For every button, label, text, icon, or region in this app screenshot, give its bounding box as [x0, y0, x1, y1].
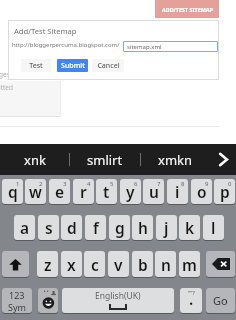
staticText: http://bloggerpercuma.blogspot.com/ — [12, 41, 120, 49]
staticText: 4 — [87, 180, 91, 188]
staticText: e — [55, 181, 65, 202]
staticText: itted — [0, 83, 14, 92]
staticText: u — [149, 181, 159, 202]
staticText: Add/Test Sitemap — [14, 26, 77, 36]
button[interactable]: t — [96, 179, 117, 204]
button[interactable]: Period — [180, 288, 202, 313]
staticText: 9 — [205, 180, 209, 188]
button[interactable]: n — [155, 251, 176, 277]
staticText: r — [80, 181, 87, 202]
staticText: o — [197, 181, 207, 202]
staticText: Cancel — [97, 61, 120, 71]
staticText: j — [164, 217, 169, 238]
staticText: d — [67, 217, 77, 238]
staticText: a — [20, 217, 30, 238]
button[interactable]: Symbols — [2, 288, 32, 313]
button[interactable]: d — [61, 215, 82, 240]
button[interactable]: v — [108, 251, 129, 277]
staticText: Test — [29, 61, 43, 71]
staticText: . — [189, 288, 194, 309]
staticText: Go — [213, 293, 228, 308]
button[interactable]: Shift — [2, 251, 29, 277]
button[interactable]: e — [49, 179, 70, 204]
button[interactable]: s — [38, 215, 59, 240]
staticText: v — [114, 254, 123, 275]
button[interactable]: x — [61, 251, 82, 277]
staticText: f — [93, 217, 99, 238]
staticText: l — [211, 217, 216, 238]
button[interactable]: u — [143, 179, 164, 204]
staticText: x — [67, 254, 76, 275]
staticText: 8 — [181, 180, 185, 188]
staticText: 0 — [228, 180, 232, 188]
button[interactable]: c — [84, 251, 105, 277]
button[interactable]: Go — [206, 288, 235, 313]
button[interactable]: m — [179, 251, 200, 277]
staticText: 123 — [9, 289, 25, 301]
button[interactable]: q — [2, 179, 23, 204]
staticText: i — [175, 181, 180, 202]
staticText: ges — [0, 70, 10, 79]
staticText: sitemap.xml — [127, 43, 162, 51]
staticText: xmkn — [158, 151, 193, 169]
staticText: t — [103, 181, 110, 202]
button[interactable]: Submit — [57, 59, 88, 72]
button[interactable]: i — [167, 179, 188, 204]
staticText: 1 — [16, 180, 20, 188]
staticText: 3 — [63, 180, 67, 188]
button[interactable]: xnk — [0, 144, 69, 175]
button[interactable]: Test — [21, 59, 51, 72]
button[interactable]: w — [25, 179, 46, 204]
staticText: English(UK) — [95, 290, 141, 302]
staticText: ADD/TEST SITEMAP — [162, 6, 213, 13]
staticText: “”? — [188, 289, 195, 297]
button[interactable]: Backspace — [206, 251, 235, 277]
button[interactable]: f — [85, 215, 106, 240]
button[interactable]: k — [179, 215, 200, 240]
staticText: xnk — [24, 151, 46, 169]
button[interactable]: l — [203, 215, 224, 240]
button[interactable]: Cancel — [92, 59, 124, 72]
button[interactable]: Emoji — [38, 288, 58, 313]
button[interactable]: h — [132, 215, 153, 240]
staticText: s — [45, 217, 53, 238]
staticText: 6 — [134, 180, 138, 188]
button[interactable]: j — [156, 215, 177, 240]
button[interactable]: r — [73, 179, 94, 204]
staticText: m — [182, 254, 197, 275]
button[interactable]: More suggestions — [204, 144, 236, 175]
staticText: 2 — [39, 180, 43, 188]
button[interactable]: g — [109, 215, 130, 240]
staticText: Sym — [8, 301, 26, 313]
button[interactable]: b — [132, 251, 153, 277]
staticText: y — [126, 181, 135, 202]
button[interactable]: smlirt — [70, 144, 140, 175]
staticText: w — [29, 181, 42, 202]
staticText: c — [91, 254, 99, 275]
staticText: 7 — [157, 180, 161, 188]
staticText: h — [138, 217, 148, 238]
button[interactable]: z — [37, 251, 58, 277]
staticText: smlirt — [87, 151, 123, 169]
staticText: q — [8, 181, 18, 202]
staticText: Submit — [61, 61, 85, 71]
button[interactable]: ADD/TEST SITEMAP — [155, 0, 219, 18]
staticText: b — [138, 254, 148, 275]
button[interactable]: p — [214, 179, 235, 204]
staticText: k — [185, 217, 195, 238]
staticText: 5 — [110, 180, 114, 188]
button[interactable]: sitemap.xml — [123, 41, 218, 52]
staticText: n — [161, 254, 171, 275]
staticText: z — [44, 254, 52, 275]
button[interactable]: Space — [62, 288, 174, 313]
button[interactable]: xmkn — [144, 144, 207, 175]
button[interactable]: a — [14, 215, 35, 240]
button[interactable]: o — [191, 179, 212, 204]
staticText: g — [115, 217, 125, 238]
staticText: p — [220, 181, 230, 202]
button[interactable]: y — [120, 179, 141, 204]
